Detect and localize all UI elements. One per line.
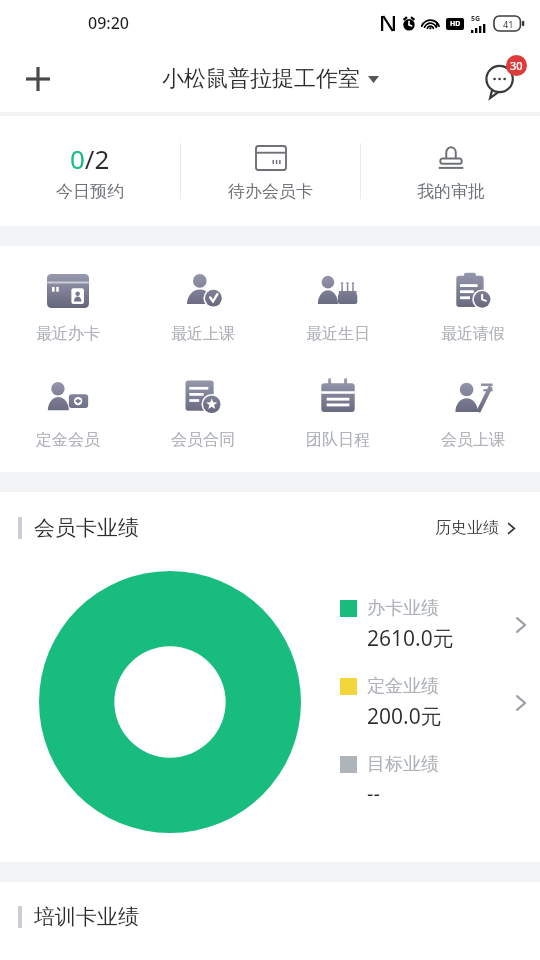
staticText: 目标业绩 (367, 753, 439, 776)
button[interactable]: 定金会员 (0, 368, 135, 456)
staticText: 会员上课 (441, 430, 505, 450)
staticText: 会员合同 (171, 430, 235, 450)
button[interactable]: 历史业绩 (431, 514, 522, 542)
button[interactable]: 会员合同 (135, 368, 270, 456)
button[interactable]: 会员上课 (405, 368, 540, 456)
button[interactable]: 目标业绩 (340, 753, 530, 807)
staticText: 会员卡业绩 (34, 515, 139, 541)
button[interactable]: 0/2 (0, 131, 180, 212)
staticText: 团队日程 (306, 430, 370, 450)
button[interactable]: 定金业绩 (340, 675, 530, 731)
button[interactable]: 最近请假 (405, 262, 540, 350)
staticText: -- (367, 780, 380, 807)
staticText: 41 (503, 18, 514, 30)
staticText: 2610.0元 (367, 624, 454, 653)
button[interactable]: 办卡业绩 (340, 597, 530, 653)
button[interactable]: 待办会员卡 (181, 131, 360, 212)
button[interactable]: 团队日程 (270, 368, 405, 456)
button[interactable]: Messages (476, 53, 528, 105)
staticText: HD (450, 19, 461, 29)
staticText: 定金会员 (36, 430, 100, 450)
staticText: 小松鼠普拉提工作室 (162, 65, 360, 93)
staticText: 办卡业绩 (367, 597, 439, 620)
staticText: 最近上课 (171, 324, 235, 344)
staticText: 30 (510, 58, 523, 73)
staticText: 今日预约 (56, 181, 124, 202)
staticText: 0/2 (70, 141, 110, 175)
staticText: 09:20 (88, 12, 129, 34)
staticText: 定金业绩 (367, 675, 439, 698)
staticText: 最近办卡 (36, 324, 100, 344)
staticText: 200.0元 (367, 702, 442, 731)
staticText: 5G (471, 14, 481, 24)
button[interactable]: 最近上课 (135, 262, 270, 350)
staticText: 历史业绩 (435, 518, 499, 538)
staticText: 最近生日 (306, 324, 370, 344)
staticText: 我的审批 (417, 181, 485, 202)
button[interactable]: Add (14, 55, 62, 103)
button[interactable]: 最近办卡 (0, 262, 135, 350)
staticText: 培训卡业绩 (34, 904, 139, 930)
staticText: 待办会员卡 (228, 181, 313, 202)
button[interactable]: 最近生日 (270, 262, 405, 350)
staticText: 最近请假 (441, 324, 505, 344)
button[interactable]: 小松鼠普拉提工作室 (162, 65, 379, 93)
button[interactable]: 我的审批 (361, 131, 540, 212)
